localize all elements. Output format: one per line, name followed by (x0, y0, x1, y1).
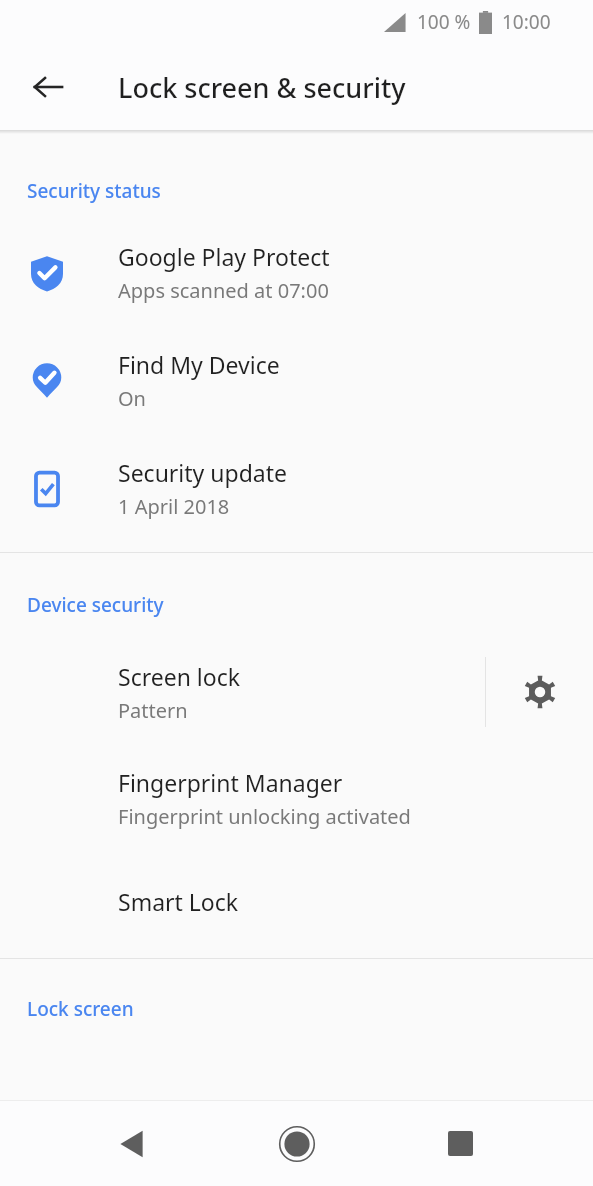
staticText: Smart Lock (118, 886, 239, 917)
button[interactable]: Find My Device (0, 345, 593, 416)
staticText: 10:00 (502, 9, 551, 35)
button[interactable]: Security update (0, 453, 593, 524)
staticText: 1 April 2018 (118, 493, 230, 520)
staticText: Fingerprint unlocking activated (118, 803, 411, 830)
staticText: Apps scanned at 07:00 (118, 277, 329, 304)
button[interactable]: Smart Lock (0, 884, 593, 919)
button[interactable]: Recent apps (416, 1101, 504, 1186)
button[interactable]: Fingerprint Manager (0, 765, 593, 832)
staticText: 100 % (417, 9, 471, 35)
button[interactable]: Back (14, 53, 82, 121)
button[interactable]: Screen lock (0, 655, 485, 730)
button[interactable]: Google Play Protect (0, 237, 593, 308)
staticText: Security status (27, 178, 161, 204)
button[interactable]: Home (253, 1101, 341, 1186)
button[interactable]: Screen lock settings (486, 650, 593, 734)
staticText: Screen lock (118, 661, 241, 692)
staticText: Device security (27, 592, 164, 618)
staticText: Google Play Protect (118, 241, 330, 272)
staticText: Pattern (118, 697, 188, 724)
staticText: Security update (118, 457, 287, 488)
staticText: On (118, 385, 146, 412)
staticText: Find My Device (118, 349, 280, 380)
staticText: Lock screen (27, 996, 134, 1022)
staticText: Fingerprint Manager (118, 767, 343, 798)
staticText: Lock screen & security (118, 69, 406, 106)
button[interactable]: Back (89, 1101, 177, 1186)
